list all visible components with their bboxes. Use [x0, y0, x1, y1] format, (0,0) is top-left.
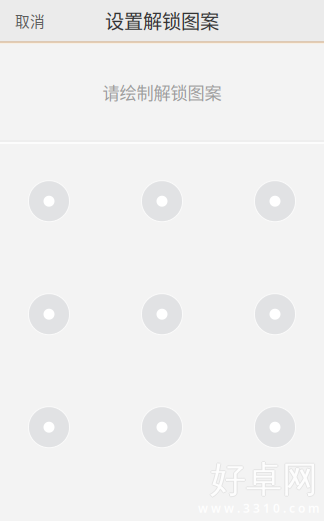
button[interactable]: Pattern dot — [141, 180, 183, 222]
button[interactable]: Pattern dot — [28, 406, 70, 448]
staticText: 设置解锁图案 — [105, 7, 219, 34]
staticText: 取消 — [15, 10, 45, 31]
button[interactable]: Pattern dot — [254, 406, 296, 448]
button[interactable]: Pattern dot — [141, 293, 183, 335]
staticText: 好卓网 — [211, 457, 319, 502]
button[interactable]: Pattern dot — [141, 406, 183, 448]
button[interactable]: Pattern dot — [28, 180, 70, 222]
button[interactable]: Pattern dot — [28, 293, 70, 335]
button[interactable]: 取消 — [0, 0, 57, 41]
button[interactable]: Pattern dot — [254, 293, 296, 335]
staticText: 好卓网 — [210, 456, 318, 501]
staticText: 好卓网 — [210, 458, 318, 503]
button[interactable]: Pattern dot — [254, 180, 296, 222]
staticText: 请绘制解锁图案 — [102, 79, 221, 104]
staticText: 好卓网 — [209, 457, 317, 502]
staticText: 好卓网 — [210, 457, 318, 502]
staticText: w w w . 3 3 1 0 . c o m — [198, 500, 320, 516]
